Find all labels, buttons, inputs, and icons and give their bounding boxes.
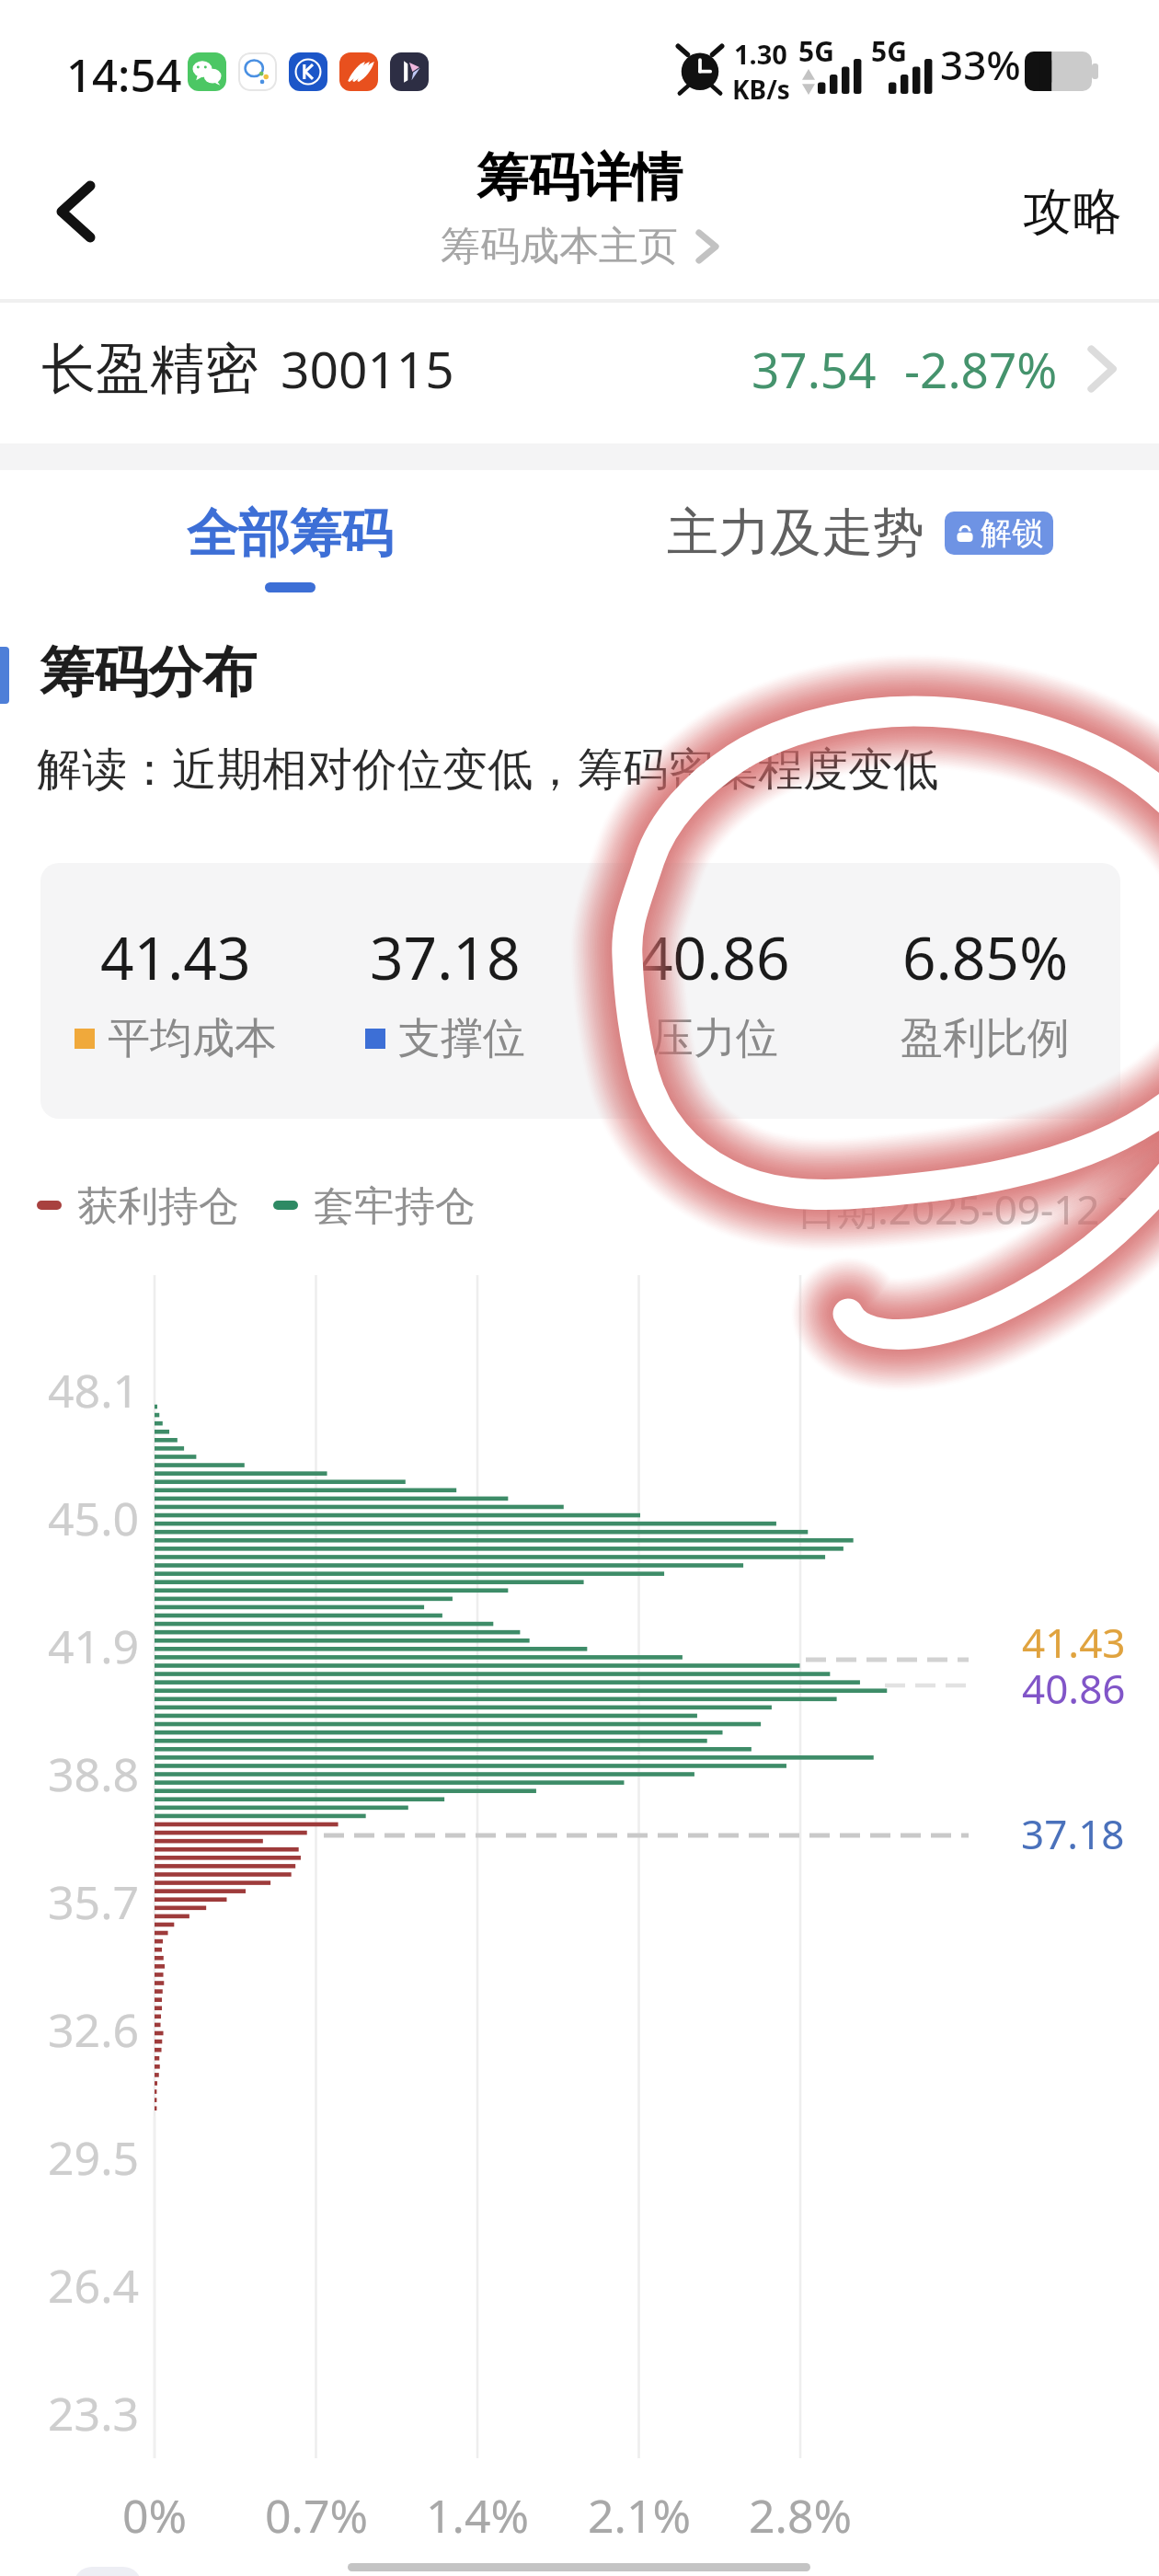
staticText: 解锁 — [981, 513, 1043, 553]
staticText: 45.0 — [48, 1487, 140, 1549]
staticText: 5G — [798, 32, 834, 70]
staticText: 37.18 — [1021, 1806, 1125, 1861]
staticText: 40.86 — [639, 917, 790, 997]
staticText: KB/s — [732, 72, 790, 107]
staticText: 1.30 — [734, 36, 787, 72]
staticText: 攻略 — [1023, 180, 1122, 243]
staticText: 盈利比例 — [901, 1012, 1070, 1065]
button[interactable]: 全部筹码 — [110, 471, 469, 618]
staticText: 2.1% — [588, 2484, 692, 2547]
staticText: 筹码成本主页 — [441, 222, 678, 271]
staticText: 长盈精密 — [41, 335, 258, 403]
staticText: 支撑位 — [398, 1012, 525, 1065]
staticText: 筹码详情 — [476, 145, 683, 211]
staticText: 5G — [871, 32, 907, 70]
staticText: 300115 — [281, 334, 454, 403]
button[interactable]: 攻略 — [1023, 180, 1122, 243]
staticText: 38.8 — [48, 1742, 140, 1805]
staticText: 37.18 — [370, 917, 521, 997]
staticText: 35.7 — [48, 1870, 140, 1933]
button[interactable]: 日期:2025-09-12 — [797, 1181, 1143, 1229]
staticText: 6.85% — [902, 917, 1069, 997]
staticText: 1.4% — [426, 2484, 530, 2547]
button[interactable]: Back — [37, 170, 120, 253]
staticText: 14:54 — [66, 44, 182, 106]
staticText: 套牢持仓 — [314, 1181, 476, 1229]
staticText: 筹码分布 — [40, 638, 257, 707]
staticText: 41.9 — [48, 1615, 140, 1677]
staticText: 26.4 — [48, 2254, 140, 2317]
staticText: 37.54 — [752, 336, 877, 402]
staticText: 压力位 — [651, 1012, 778, 1065]
staticText: 32.6 — [48, 1998, 140, 2061]
staticText: 0.7% — [265, 2484, 369, 2547]
staticText: 41.43 — [100, 917, 251, 997]
staticText: 获利持仓 — [77, 1181, 239, 1229]
staticText: 48.1 — [48, 1359, 140, 1421]
staticText: 平均成本 — [108, 1012, 277, 1065]
staticText: 主力及走势 — [667, 500, 924, 566]
staticText: 日期:2025-09-12 — [797, 1181, 1100, 1229]
staticText: 解读：近期相对价位变低，筹码密集程度变低 — [37, 742, 938, 799]
staticText: 23.3 — [48, 2382, 140, 2444]
staticText: -2.87% — [904, 336, 1058, 402]
staticText: 全部筹码 — [187, 501, 393, 567]
staticText: 2.8% — [749, 2484, 853, 2547]
staticText: 41.43 — [1022, 1615, 1126, 1670]
staticText: 0% — [122, 2484, 188, 2547]
staticText: 33% — [940, 37, 1021, 92]
button[interactable]: 主力及走势 — [667, 471, 1053, 609]
staticText: 29.5 — [48, 2126, 140, 2189]
button[interactable]: 筹码成本主页 — [441, 222, 718, 271]
staticText: 40.86 — [1022, 1661, 1126, 1716]
button[interactable]: 长盈精密 — [0, 293, 1159, 444]
